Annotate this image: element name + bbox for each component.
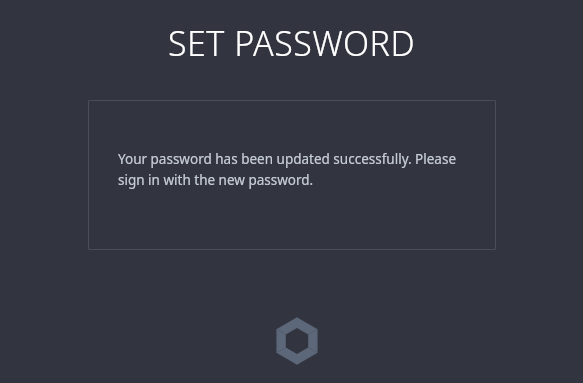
other: App logo <box>273 317 321 365</box>
button[interactable]: Your password has been updated successfu… <box>88 100 496 250</box>
staticText: SET PASSWORD <box>0 20 583 66</box>
staticText: Your password has been updated successfu… <box>118 150 466 189</box>
